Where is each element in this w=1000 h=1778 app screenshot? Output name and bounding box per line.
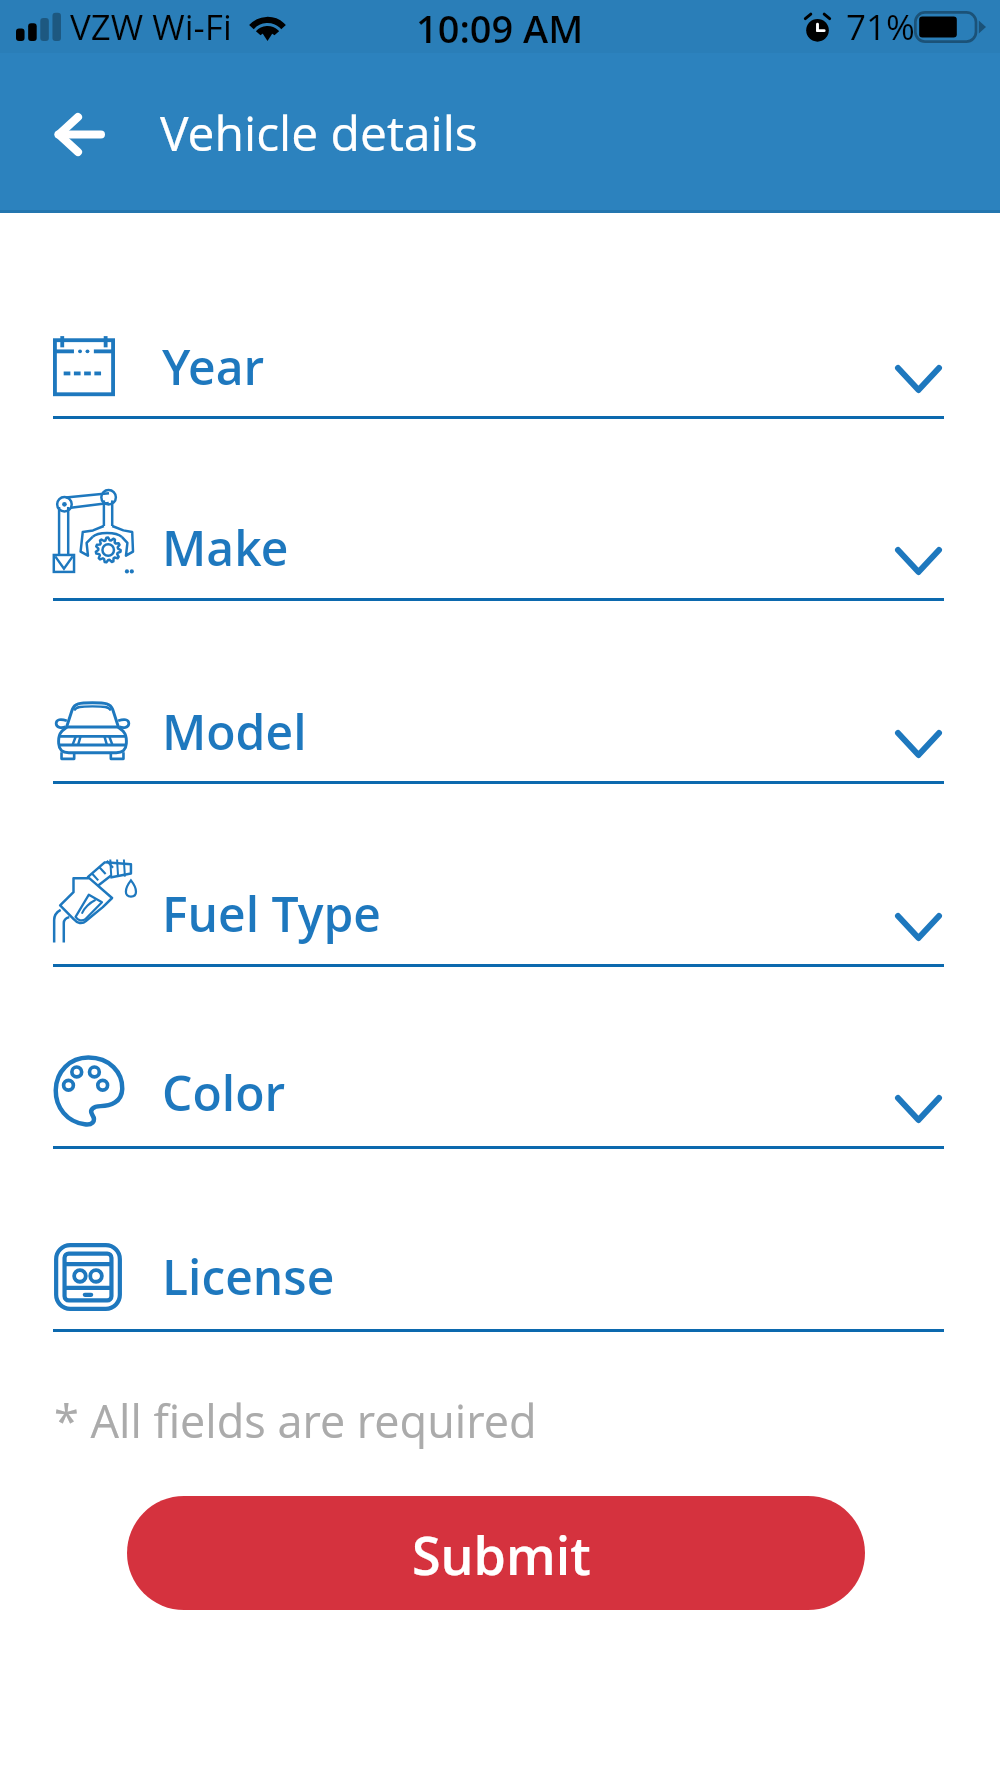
button[interactable]: Make [0, 417, 1000, 602]
staticText: Model [162, 699, 307, 764]
button[interactable]: Color [0, 965, 1000, 1150]
staticText: Submit [412, 1519, 591, 1590]
button[interactable]: Submit [127, 1496, 865, 1610]
staticText: Fuel Type [162, 881, 382, 946]
staticText: Make [162, 515, 289, 580]
button[interactable]: Model [0, 599, 1000, 785]
button[interactable]: Year [0, 245, 1000, 420]
staticText: 71% [846, 3, 915, 51]
button[interactable]: License [0, 1147, 1000, 1333]
staticText: Vehicle details [160, 100, 478, 165]
button[interactable]: Back [34, 92, 124, 176]
button[interactable]: Fuel Type [0, 782, 1000, 968]
staticText: Year [162, 334, 265, 399]
staticText: VZW Wi-Fi [70, 3, 232, 51]
staticText: * All fields are required [54, 1390, 537, 1450]
staticText: Color [162, 1060, 286, 1125]
staticText: License [162, 1244, 335, 1309]
staticText: 10:09 AM [416, 2, 584, 52]
